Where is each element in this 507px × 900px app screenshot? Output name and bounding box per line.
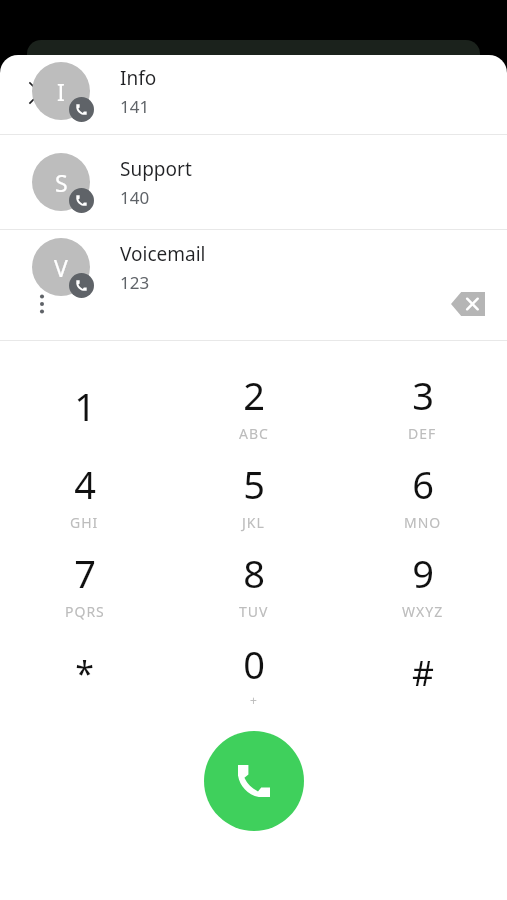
button[interactable]: 2 — [169, 361, 338, 450]
staticText: TUV — [239, 602, 269, 621]
button[interactable]: More options — [20, 282, 64, 326]
button[interactable]: 4 — [0, 450, 169, 539]
button[interactable]: # — [338, 628, 507, 717]
staticText: I — [57, 76, 65, 107]
staticText: + — [250, 692, 258, 708]
staticText: 140 — [120, 186, 150, 209]
button[interactable]: 5 — [169, 450, 338, 539]
button[interactable]: 0 — [169, 628, 338, 717]
staticText: V — [54, 252, 68, 283]
staticText: # — [412, 650, 434, 696]
button[interactable]: I — [0, 62, 507, 134]
button[interactable]: S — [0, 135, 507, 229]
staticText: 9 — [412, 547, 434, 599]
staticText: MNO — [404, 513, 442, 532]
staticText: 5 — [243, 458, 265, 510]
staticText: Info — [120, 65, 157, 91]
staticText: 7 — [74, 547, 96, 599]
button[interactable]: 3 — [338, 361, 507, 450]
staticText: 0 — [243, 638, 265, 690]
staticText: 2 — [243, 369, 265, 421]
staticText: GHI — [70, 513, 99, 532]
staticText: * — [75, 650, 94, 696]
staticText: 1 — [74, 380, 96, 432]
staticText: 123 — [120, 271, 150, 294]
button[interactable]: 1 — [0, 361, 169, 450]
staticText: 4 — [74, 458, 96, 510]
button[interactable]: Backspace — [444, 280, 492, 328]
staticText: 6 — [412, 458, 434, 510]
button[interactable]: 6 — [338, 450, 507, 539]
staticText: 141 — [120, 95, 150, 118]
staticText: JKL — [242, 513, 265, 532]
button[interactable]: * — [0, 628, 169, 717]
staticText: S — [55, 167, 68, 198]
button[interactable]: 8 — [169, 539, 338, 628]
staticText: Voicemail — [120, 241, 206, 267]
button[interactable]: 7 — [0, 539, 169, 628]
staticText: WXYZ — [402, 602, 444, 621]
button[interactable]: V — [0, 238, 507, 310]
staticText: Support — [120, 156, 192, 182]
staticText: DEF — [408, 424, 437, 443]
button[interactable]: Close — [18, 71, 62, 115]
button[interactable]: Call — [204, 731, 304, 831]
staticText: PQRS — [65, 602, 105, 621]
button[interactable]: 9 — [338, 539, 507, 628]
staticText: ABC — [239, 424, 269, 443]
staticText: 3 — [412, 369, 434, 421]
staticText: 8 — [243, 547, 265, 599]
